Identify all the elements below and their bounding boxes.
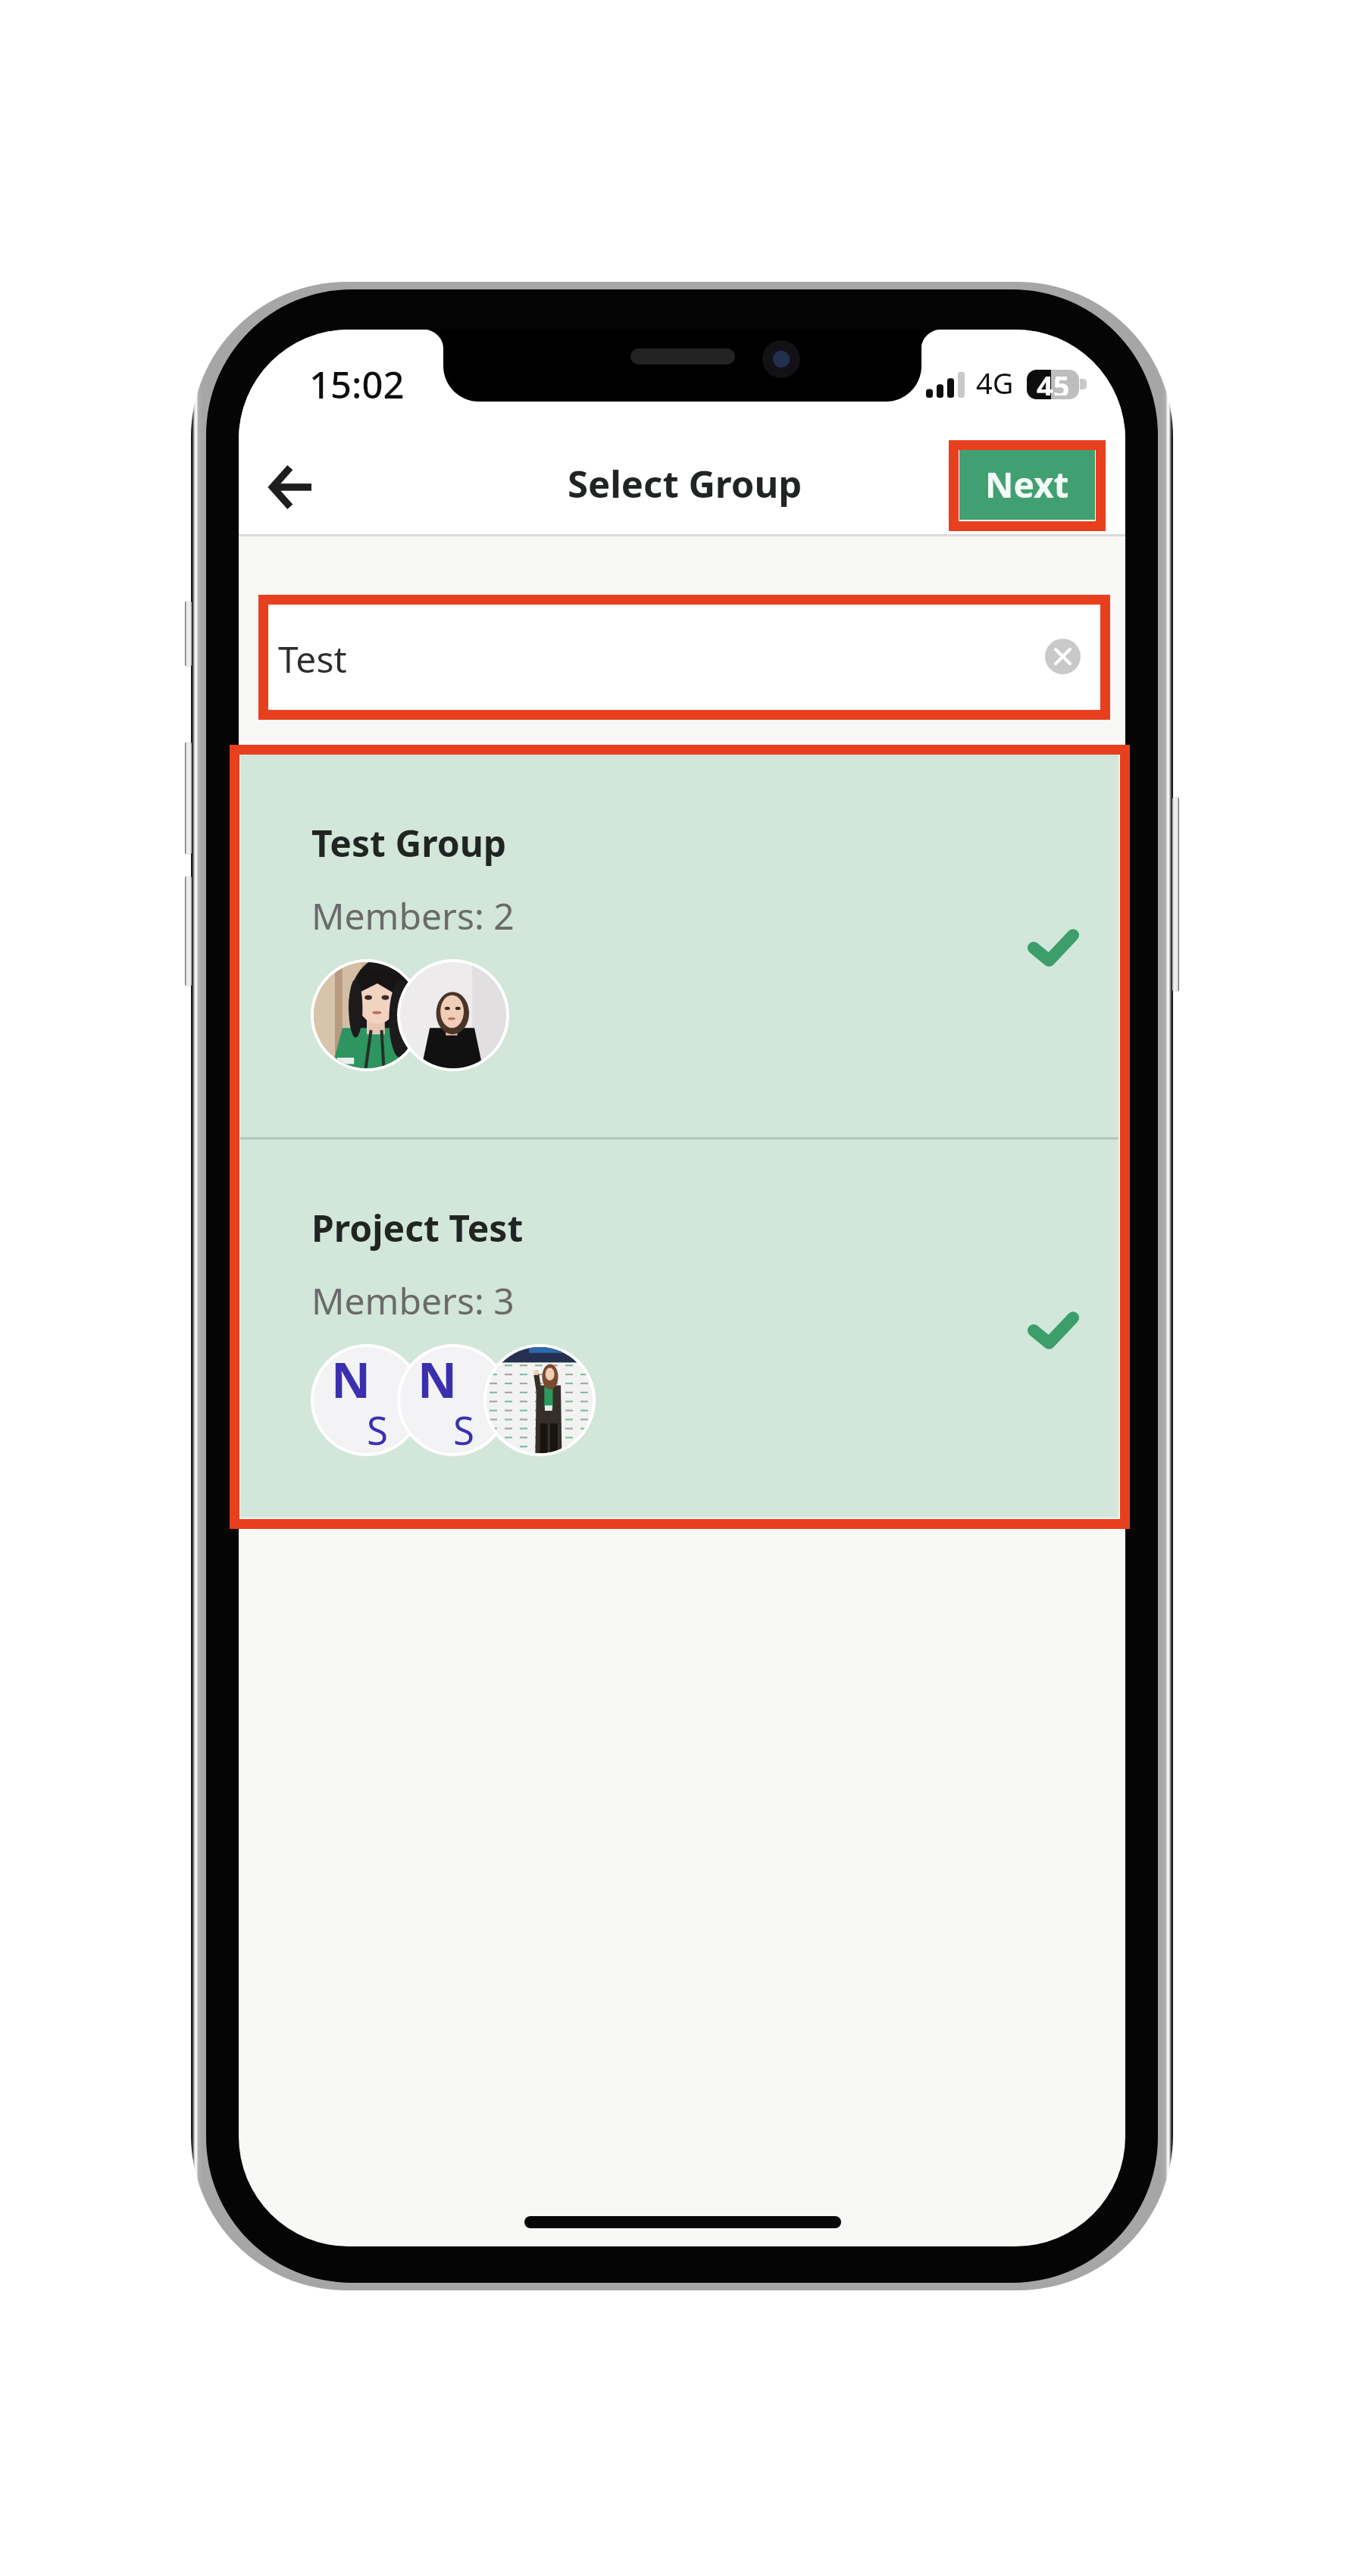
button[interactable]: Back bbox=[241, 438, 339, 536]
button[interactable]: Test Group bbox=[240, 755, 1118, 1137]
button[interactable]: Clear text bbox=[1045, 639, 1081, 674]
button[interactable]: Project Test bbox=[240, 1140, 1118, 1518]
staticText: Next bbox=[985, 461, 1069, 508]
button[interactable]: Test bbox=[269, 605, 1100, 708]
staticText: 4G bbox=[976, 363, 1014, 402]
staticText: S bbox=[453, 1403, 474, 1453]
staticText: Test bbox=[278, 634, 347, 683]
staticText: 15:02 bbox=[309, 359, 405, 410]
button[interactable]: Next bbox=[959, 449, 1095, 520]
staticText: Project Test bbox=[311, 1203, 524, 1252]
staticText: Test Group bbox=[311, 818, 507, 868]
staticText: N bbox=[418, 1347, 458, 1412]
staticText: Members: 2 bbox=[311, 891, 515, 940]
staticText: 45 bbox=[1037, 370, 1070, 395]
staticText: Select Group bbox=[568, 458, 802, 509]
staticText: Members: 3 bbox=[311, 1276, 515, 1325]
staticText: N bbox=[331, 1347, 371, 1412]
staticText: S bbox=[367, 1403, 388, 1453]
